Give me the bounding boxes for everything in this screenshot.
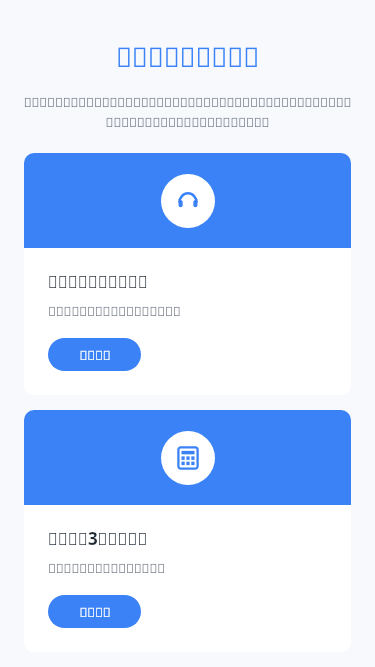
other: Headphones	[161, 174, 215, 228]
staticText: ￿￿￿￿￿￿￿￿￿	[20, 38, 355, 75]
button[interactable]: ￿￿￿￿	[48, 595, 141, 628]
staticText: ￿￿￿￿￿￿￿￿￿￿￿￿￿￿￿￿￿	[48, 302, 181, 320]
other: Calculator	[161, 431, 215, 485]
staticText: ￿￿￿￿3￿￿￿￿￿	[48, 527, 148, 550]
staticText: ￿￿￿￿￿￿￿￿￿￿￿￿￿￿￿	[48, 559, 166, 577]
button[interactable]: Headphones	[24, 153, 351, 395]
staticText: ￿￿￿￿	[79, 603, 111, 621]
staticText: ￿￿￿￿	[79, 346, 111, 364]
button[interactable]: Calculator	[24, 410, 351, 652]
button[interactable]: ￿￿￿￿	[48, 338, 141, 371]
staticText: ￿￿￿￿￿￿￿￿￿￿￿￿￿￿￿￿￿￿￿￿￿￿￿￿￿￿￿￿￿￿￿￿￿￿￿￿￿￿￿￿…	[22, 93, 353, 131]
staticText: ￿￿￿￿￿￿￿￿￿￿	[48, 270, 149, 293]
